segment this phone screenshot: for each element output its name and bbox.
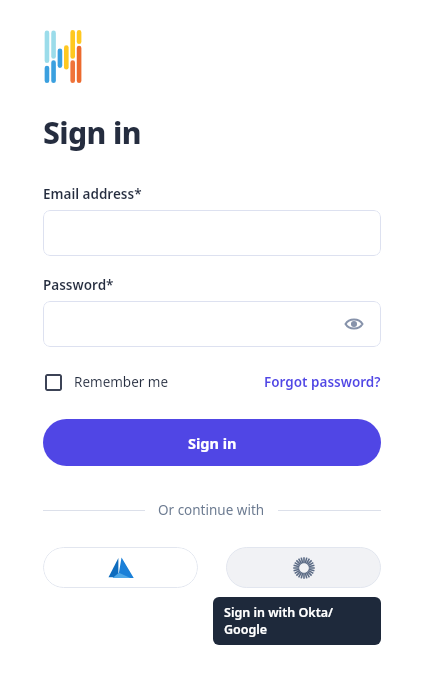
staticText: Email address* [43,185,142,203]
button[interactable]: Sign in [43,419,381,466]
staticText: Sign in [43,112,141,153]
staticText: Remember me [74,373,169,391]
staticText: Or continue with [158,501,265,519]
button[interactable] [43,210,381,256]
staticText: Forgot password? [264,373,381,391]
button[interactable]: Sign in with Microsoft Azure [43,547,198,588]
staticText: Sign in with Okta/Google [224,604,370,638]
button[interactable]: Show password [43,301,381,347]
staticText: Password* [43,276,114,294]
button[interactable]: Show password [343,313,365,335]
button[interactable]: Forgot password? [264,369,381,395]
staticText: Sign in [188,433,237,453]
button[interactable]: Sign in with Okta/Google [226,547,381,588]
button[interactable]: Remember me [43,369,171,395]
